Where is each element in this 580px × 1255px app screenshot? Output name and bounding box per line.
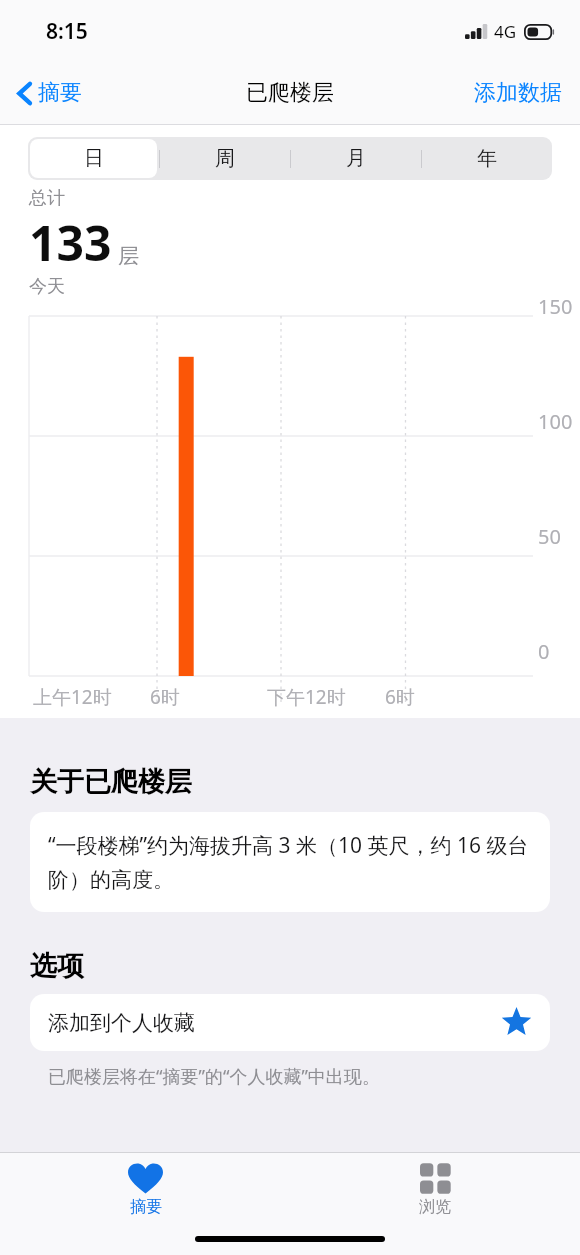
staticText: 已爬楼层 xyxy=(246,79,334,107)
staticText: 摘要 xyxy=(38,79,82,107)
other: Add to Favorites xyxy=(501,1007,532,1038)
staticText: 周 xyxy=(215,146,235,171)
staticText: 已爬楼层将在“摘要”的“个人收藏”中出现。 xyxy=(48,1064,380,1089)
button[interactable]: 摘要 xyxy=(104,1160,187,1220)
staticText: 月 xyxy=(346,146,366,171)
staticText: 年 xyxy=(477,146,497,171)
button[interactable]: 摘要 xyxy=(10,74,90,112)
staticText: 100 xyxy=(538,408,573,435)
staticText: 上午12时 xyxy=(33,684,112,710)
staticText: 选项 xyxy=(30,949,84,983)
staticText: 50 xyxy=(538,523,561,550)
staticText: 今天 xyxy=(29,275,65,298)
staticText: 日 xyxy=(84,146,104,171)
staticText: 摘要 xyxy=(130,1197,162,1217)
staticText: “一段楼梯”约为海拔升高 3 米（10 英尺，约 16 级台阶）的高度。 xyxy=(48,831,532,893)
staticText: 0 xyxy=(538,638,550,665)
staticText: 8:15 xyxy=(46,17,88,46)
staticText: 添加数据 xyxy=(474,79,562,107)
staticText: 层 xyxy=(118,243,139,269)
button[interactable]: 周 xyxy=(159,137,290,180)
button[interactable]: 添加数据 xyxy=(468,74,568,112)
button[interactable]: 日 xyxy=(28,137,159,180)
staticText: 6时 xyxy=(385,684,415,710)
staticText: 4G xyxy=(494,20,517,43)
staticText: 添加到个人收藏 xyxy=(48,1010,195,1036)
button[interactable]: 月 xyxy=(290,137,421,180)
staticText: 133 xyxy=(29,210,112,275)
staticText: 下午12时 xyxy=(267,684,346,710)
staticText: 150 xyxy=(538,293,573,320)
button[interactable]: 浏览 xyxy=(395,1160,475,1220)
staticText: 浏览 xyxy=(419,1197,451,1217)
button[interactable]: 添加到个人收藏 xyxy=(30,994,550,1051)
staticText: 6时 xyxy=(150,684,180,710)
staticText: 总计 xyxy=(29,187,65,210)
button[interactable]: 年 xyxy=(421,137,552,180)
staticText: 关于已爬楼层 xyxy=(30,765,192,799)
